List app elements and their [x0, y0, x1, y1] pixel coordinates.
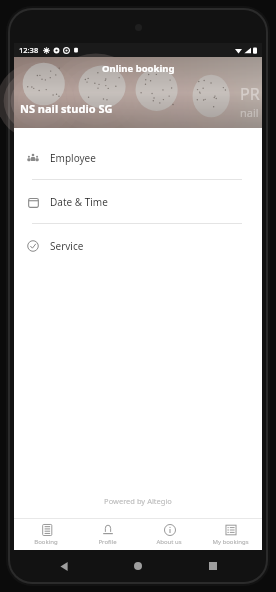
- staticText: Profile: [98, 538, 117, 546]
- staticText: Online booking: [102, 62, 175, 75]
- button[interactable]: Back: [53, 555, 75, 577]
- button[interactable]: Profile: [78, 519, 136, 550]
- button[interactable]: About us: [140, 519, 198, 550]
- staticText: Date & Time: [50, 195, 108, 209]
- staticText: 12:38: [19, 45, 39, 55]
- staticText: Service: [50, 239, 84, 253]
- button[interactable]: Service: [14, 224, 262, 267]
- staticText: About us: [156, 538, 182, 546]
- staticText: Powered by Altegio: [14, 496, 262, 506]
- staticText: Employee: [50, 151, 96, 165]
- button[interactable]: Recent apps: [202, 555, 224, 577]
- button[interactable]: Booking: [17, 519, 75, 550]
- staticText: My bookings: [212, 538, 249, 546]
- button[interactable]: Employee: [14, 136, 262, 179]
- staticText: nail: [240, 105, 259, 120]
- staticText: NS nail studio SG: [20, 101, 113, 116]
- staticText: Booking: [34, 538, 58, 546]
- button[interactable]: My bookings: [201, 519, 259, 550]
- staticText: PR: [240, 83, 260, 105]
- button[interactable]: Home: [127, 555, 149, 577]
- button[interactable]: Date & Time: [14, 180, 262, 223]
